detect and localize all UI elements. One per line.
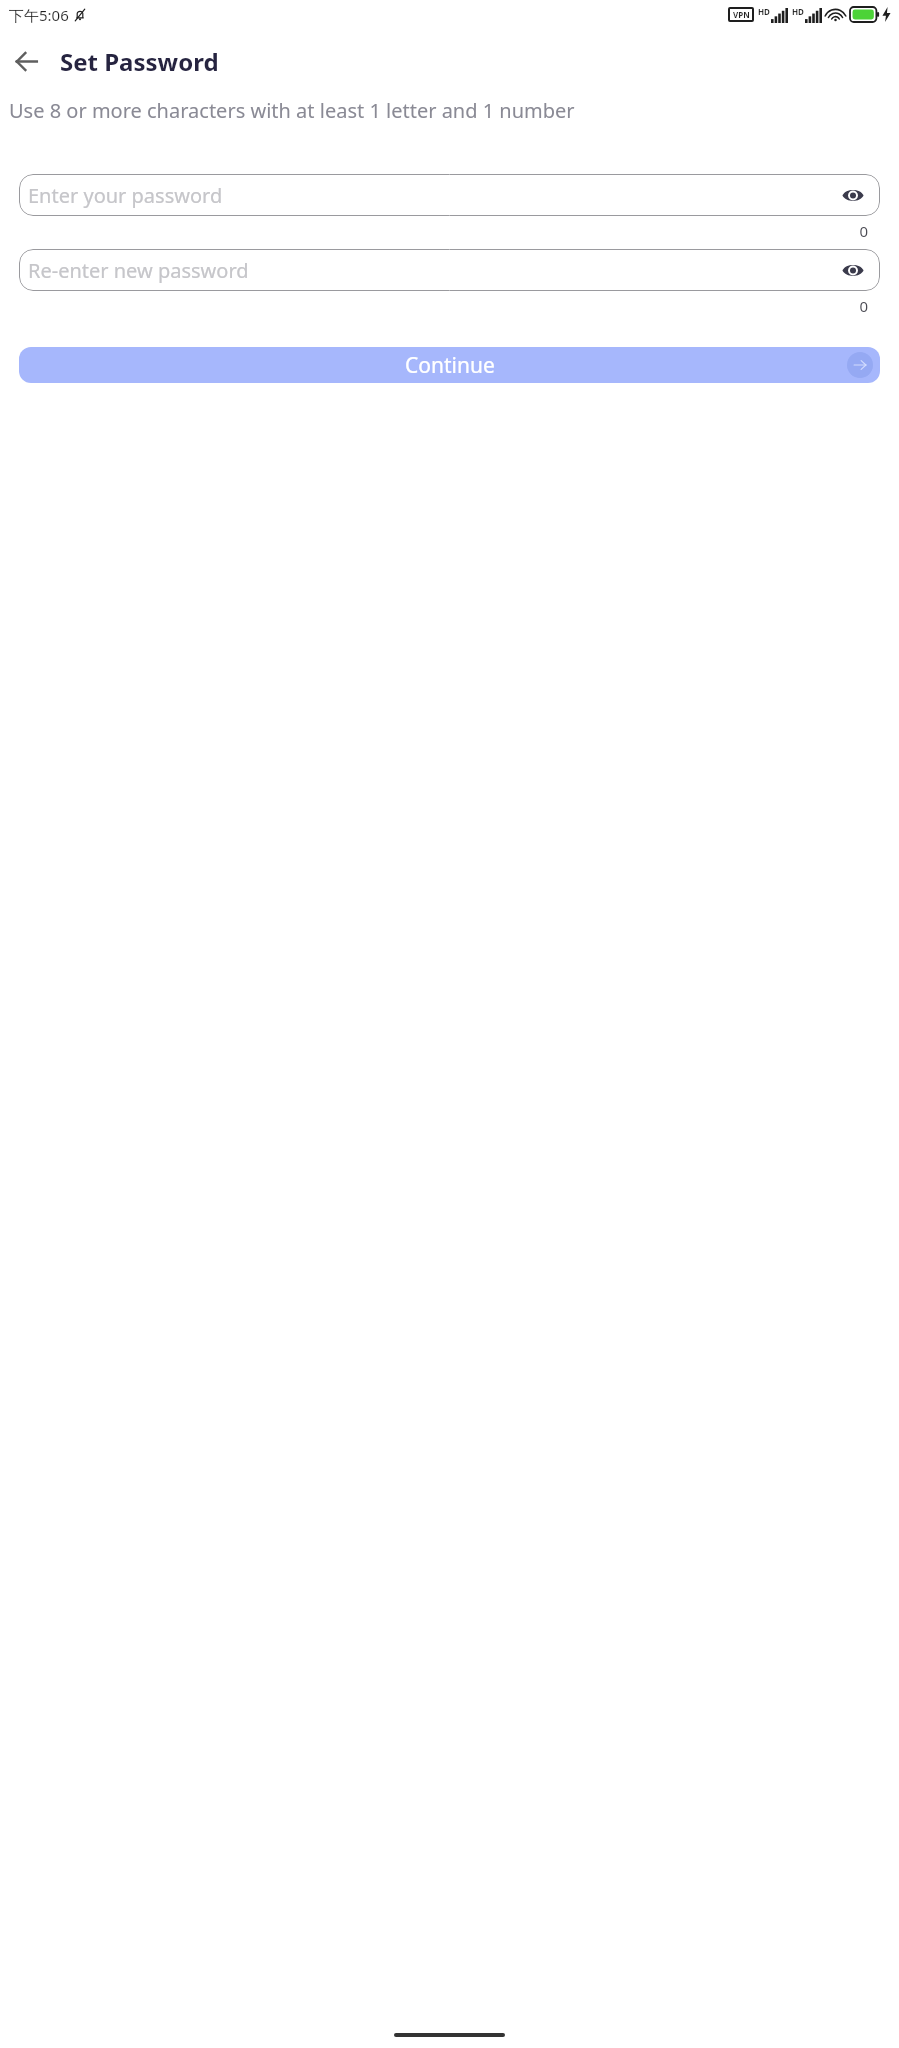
staticText: 0 (859, 221, 868, 241)
button[interactable]: Show password (838, 180, 868, 210)
button[interactable]: Enter your password (19, 174, 880, 216)
button[interactable]: Show password (838, 255, 868, 285)
staticText: Use 8 or more characters with at least 1… (9, 97, 575, 124)
button[interactable]: Continue (847, 352, 873, 378)
staticText: 下午5:06 (9, 5, 69, 25)
staticText: 0 (859, 296, 868, 316)
staticText: VPN (733, 9, 750, 20)
staticText: Enter your password (28, 182, 838, 209)
staticText: HD (758, 6, 770, 17)
button[interactable]: Continue (19, 347, 880, 383)
staticText: Set Password (60, 45, 219, 78)
button[interactable]: Re-enter new password (19, 249, 880, 291)
button[interactable]: Back (4, 39, 48, 83)
staticText: Re-enter new password (28, 257, 838, 284)
staticText: Continue (405, 351, 495, 380)
staticText: HD (792, 6, 804, 17)
